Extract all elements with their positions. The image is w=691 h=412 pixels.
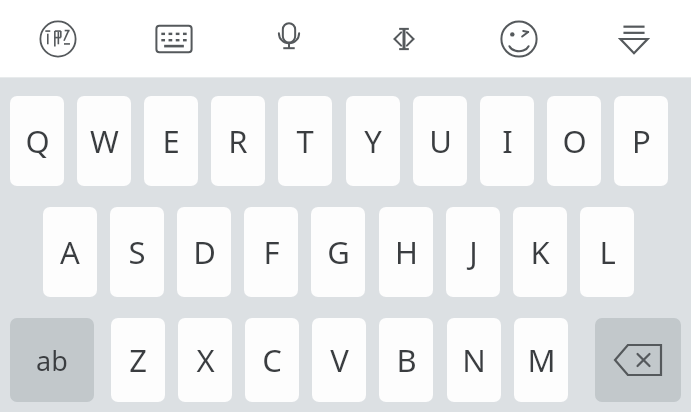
staticText: F xyxy=(263,231,280,273)
button[interactable]: W xyxy=(77,96,131,186)
staticText: S xyxy=(128,231,146,273)
button[interactable]: Q xyxy=(10,96,64,186)
button[interactable]: N xyxy=(447,318,501,402)
button[interactable]: R xyxy=(211,96,265,186)
staticText: U xyxy=(429,120,452,162)
button[interactable]: A xyxy=(43,207,97,297)
button[interactable]: Hide keyboard xyxy=(576,0,691,78)
button[interactable]: G xyxy=(311,207,365,297)
button[interactable]: K xyxy=(513,207,567,297)
staticText: Z xyxy=(129,339,147,381)
staticText: M xyxy=(527,339,556,381)
button[interactable]: X xyxy=(178,318,232,402)
staticText: I xyxy=(502,120,513,162)
staticText: B xyxy=(396,339,417,381)
staticText: G xyxy=(327,231,350,273)
staticText: Q xyxy=(25,120,50,162)
button[interactable]: Y xyxy=(346,96,400,186)
staticText: L xyxy=(599,231,616,273)
staticText: Y xyxy=(364,120,382,162)
staticText: C xyxy=(262,339,282,381)
button[interactable]: Keyboard layout xyxy=(116,0,231,78)
staticText: N xyxy=(462,339,486,381)
button[interactable]: M xyxy=(514,318,568,402)
staticText: W xyxy=(90,120,119,162)
button[interactable]: Move cursor xyxy=(346,0,461,78)
staticText: D xyxy=(193,231,216,273)
button[interactable]: O xyxy=(547,96,601,186)
staticText: ab xyxy=(36,342,68,379)
button[interactable]: J xyxy=(446,207,500,297)
staticText: H xyxy=(395,231,418,273)
staticText: V xyxy=(330,339,349,381)
staticText: E xyxy=(162,120,180,162)
button[interactable]: E xyxy=(144,96,198,186)
button[interactable]: U xyxy=(413,96,467,186)
button[interactable]: F xyxy=(244,207,298,297)
button[interactable]: D xyxy=(177,207,231,297)
staticText: T xyxy=(296,120,314,162)
button[interactable]: T xyxy=(278,96,332,186)
staticText: K xyxy=(530,231,550,273)
staticText: A xyxy=(60,231,80,273)
button[interactable]: I xyxy=(480,96,534,186)
button[interactable]: ab xyxy=(10,318,94,402)
button[interactable]: H xyxy=(379,207,433,297)
button[interactable]: V xyxy=(312,318,366,402)
staticText: J xyxy=(469,231,478,273)
button[interactable]: Voice input xyxy=(231,0,346,78)
button[interactable]: Input method logo xyxy=(0,0,116,78)
button[interactable]: P xyxy=(614,96,668,186)
staticText: R xyxy=(228,120,248,162)
button[interactable]: B xyxy=(379,318,433,402)
button[interactable]: Z xyxy=(111,318,165,402)
button[interactable]: Emoji xyxy=(461,0,576,78)
button[interactable]: L xyxy=(580,207,634,297)
staticText: P xyxy=(632,120,651,162)
button[interactable]: C xyxy=(245,318,299,402)
staticText: O xyxy=(562,120,587,162)
button[interactable]: S xyxy=(110,207,164,297)
button[interactable]: Backspace xyxy=(595,318,681,402)
staticText: X xyxy=(196,339,215,381)
